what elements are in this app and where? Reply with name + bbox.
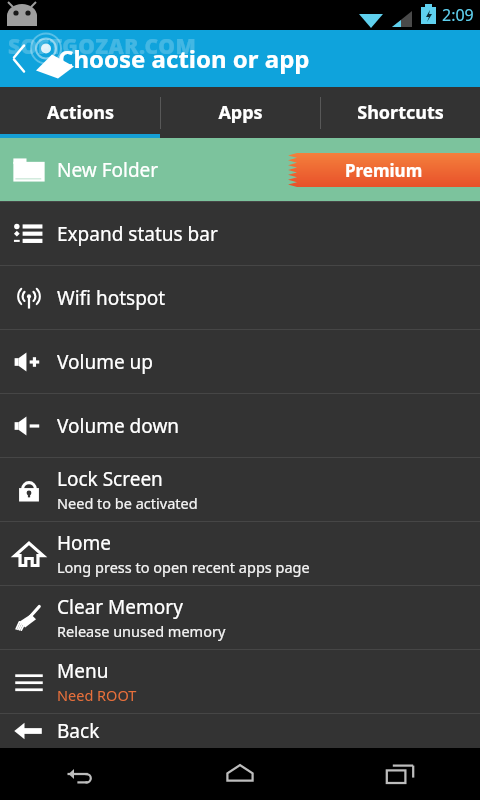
staticText: 2:09 xyxy=(442,4,474,26)
button[interactable]: Volume up xyxy=(0,330,480,393)
staticText: Need to be activated xyxy=(57,493,198,513)
staticText: Premium xyxy=(345,159,423,182)
button[interactable]: Apps xyxy=(160,87,320,138)
button[interactable]: Back xyxy=(0,714,480,748)
staticText: Back xyxy=(57,718,100,744)
button[interactable]: Menu xyxy=(0,650,480,713)
button[interactable]: Lock Screen xyxy=(0,458,480,521)
staticText: Volume down xyxy=(57,413,180,439)
button[interactable]: New Folder xyxy=(0,138,480,201)
staticText: Release unused memory xyxy=(57,621,226,641)
staticText: Actions xyxy=(47,100,114,125)
button[interactable]: Recent apps xyxy=(320,748,480,800)
button[interactable]: Volume down xyxy=(0,394,480,457)
button[interactable]: Shortcuts xyxy=(320,87,480,138)
button[interactable]: Back xyxy=(0,30,58,87)
staticText: Menu xyxy=(57,658,109,684)
button[interactable]: Home xyxy=(160,748,320,800)
button[interactable]: Wifi hotspot xyxy=(0,266,480,329)
staticText: Clear Memory xyxy=(57,594,183,620)
button[interactable]: Clear Memory xyxy=(0,586,480,649)
staticText: Home xyxy=(57,530,112,556)
staticText: Expand status bar xyxy=(57,221,218,247)
button[interactable]: Premium xyxy=(288,153,480,187)
staticText: Long press to open recent apps page xyxy=(57,557,310,577)
staticText: Choose action or app xyxy=(58,42,310,75)
staticText: Wifi hotspot xyxy=(57,285,166,311)
button[interactable]: Actions xyxy=(0,87,160,138)
button[interactable]: Home xyxy=(0,522,480,585)
staticText: Need ROOT xyxy=(57,685,137,705)
button[interactable]: Expand status bar xyxy=(0,202,480,265)
staticText: Shortcuts xyxy=(357,100,444,125)
button[interactable]: Back xyxy=(0,748,160,800)
staticText: Lock Screen xyxy=(57,466,163,492)
staticText: New Folder xyxy=(57,157,159,183)
staticText: Volume up xyxy=(57,349,154,375)
staticText: Apps xyxy=(218,100,263,125)
staticText: SOFTGOZAR.COM xyxy=(8,32,197,61)
